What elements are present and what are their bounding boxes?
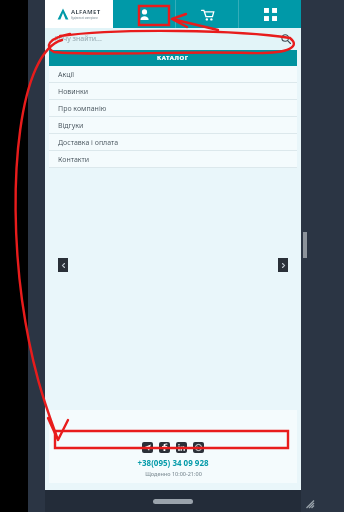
staticText: Хочу знайти... [55,34,102,44]
staticText: Про компанію [58,104,107,114]
staticText: Контакти [58,155,90,165]
staticText: +38(095) 34 09 928 [137,457,209,468]
button[interactable]: Telegram [142,442,153,453]
staticText: Акції [58,70,75,80]
button[interactable]: ALFAMET home [45,0,113,28]
staticText: ALFAMET [71,8,101,16]
button[interactable]: Контакти [49,151,297,168]
staticText: Новинки [58,87,89,97]
button[interactable]: Хочу знайти... [45,28,301,50]
button[interactable]: Navigation action [239,0,301,28]
button[interactable]: Previous slide [58,258,68,272]
staticText: Доставка і оплата [58,138,119,148]
staticText: будівельні матеріали [71,16,98,20]
button[interactable]: Facebook [159,442,170,453]
button[interactable]: Navigation action [113,0,175,28]
button[interactable]: Акції [49,66,297,83]
button[interactable]: Next slide [278,258,288,272]
staticText: КАТАЛОГ [157,54,189,62]
button[interactable]: Доставка і оплата [49,134,297,151]
button[interactable]: Новинки [49,83,297,100]
button[interactable]: Navigation action [176,0,238,28]
button[interactable]: Відгуки [49,117,297,134]
button[interactable]: +38(095) 34 09 928 [137,457,209,468]
other: Search [281,34,291,44]
staticText: Щоденно 10:00-21:00 [145,470,202,477]
button[interactable]: LinkedIn [176,442,187,453]
button[interactable]: Про компанію [49,100,297,117]
button[interactable]: WhatsApp [193,442,204,453]
button[interactable]: КАТАЛОГ [49,50,297,66]
staticText: Відгуки [58,121,84,131]
